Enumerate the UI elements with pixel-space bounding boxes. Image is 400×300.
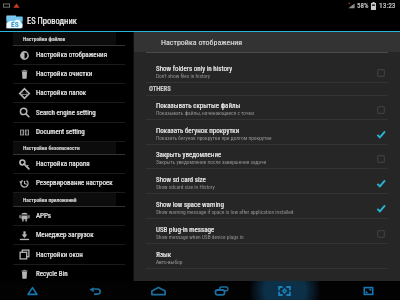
button[interactable]: Язык (134, 244, 400, 269)
button[interactable]: Screen capture (268, 281, 300, 300)
button[interactable]: Home (142, 281, 174, 300)
staticText: Настройка отображения (161, 38, 243, 47)
staticText: Show low space warning (156, 201, 224, 209)
staticText: Show sd card size (156, 176, 206, 184)
staticText: USB plug-in message (156, 226, 215, 234)
button[interactable]: Document setting (0, 123, 133, 142)
staticText: Настройки окон (36, 251, 83, 259)
staticText: Don't show files in history (156, 73, 211, 79)
staticText: Настройки приложений (23, 197, 77, 203)
staticText: Show message when USB device plugs in (156, 234, 244, 240)
staticText: Настройки файлов (23, 36, 66, 42)
staticText: Закрыть уведомление после завершения зад… (156, 159, 267, 165)
staticText: Show warning message if space is low aft… (156, 209, 294, 215)
button[interactable]: Резервирование настроек (0, 174, 133, 193)
button[interactable]: Show low space warning (134, 194, 400, 219)
button[interactable]: Закрыть уведомление (134, 145, 400, 169)
staticText: APPs (36, 212, 51, 220)
staticText: Настройка отображения (36, 51, 108, 59)
button[interactable]: Recycle Bin (0, 265, 133, 284)
staticText: Document setting (36, 128, 85, 136)
button[interactable]: Show sd card size (134, 169, 400, 194)
staticText: Закрыть уведомление (156, 151, 222, 159)
staticText: Менеджер загрузок (36, 231, 94, 239)
button[interactable]: Search engine setting (0, 103, 133, 123)
button[interactable]: ES File Explorer (6, 14, 23, 29)
staticText: Show folders only in history (156, 65, 233, 73)
staticText: Настройка папок (36, 89, 87, 97)
staticText: Search engine setting (36, 109, 96, 117)
button[interactable]: Настройка папок (0, 84, 133, 103)
button[interactable]: Recent apps (205, 281, 237, 300)
staticText: Показать бегунок прокрутки (156, 127, 240, 135)
staticText: Настройка пароля (36, 160, 90, 168)
staticText: Язык (156, 251, 172, 259)
button[interactable]: Менеджер загрузок (0, 226, 133, 245)
staticText: Показывать файлы, начинающиеся с точки (156, 110, 254, 116)
staticText: Настройка очистки (36, 70, 93, 78)
button[interactable]: Настройки окон (0, 245, 133, 265)
staticText: Авто-выбор (156, 259, 183, 265)
button[interactable]: Настройка очистки (0, 65, 133, 84)
button[interactable]: Настройка пароля (0, 155, 133, 174)
staticText: 13:23 (379, 1, 396, 10)
button[interactable]: Настройка отображения (0, 46, 133, 65)
button[interactable]: Показывать скрытые файлы (134, 96, 400, 120)
staticText: Настройки безопасности (23, 145, 80, 151)
button[interactable]: Back (79, 281, 111, 300)
button[interactable]: Show folders only in history (134, 53, 400, 83)
button[interactable]: Expand (352, 281, 384, 300)
staticText: Recycle Bin (36, 270, 68, 278)
staticText: Резервирование настроек (36, 179, 113, 187)
button[interactable]: Показать бегунок прокрутки (134, 120, 400, 145)
button[interactable]: Up (16, 281, 48, 300)
staticText: ES Проводник (27, 16, 77, 26)
button[interactable]: APPs (0, 207, 133, 226)
button[interactable]: USB plug-in message (134, 219, 400, 244)
staticText: OTHERS (149, 85, 171, 93)
staticText: ES (11, 20, 19, 29)
staticText: Показать бегунок прокрутки при долгом пр… (156, 135, 272, 141)
staticText: Show sdcard size in History (156, 184, 215, 190)
staticText: Показывать скрытые файлы (156, 102, 241, 110)
staticText: 58% (357, 2, 369, 10)
